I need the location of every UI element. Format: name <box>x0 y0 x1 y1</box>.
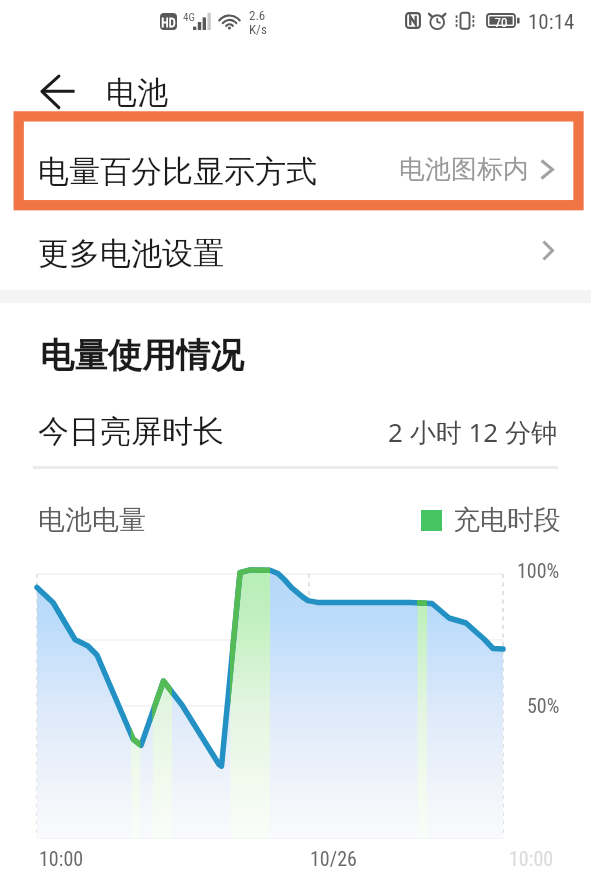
staticText: K/s <box>249 22 267 37</box>
button[interactable]: 电量百分比显示方式 <box>13 112 583 210</box>
staticText: 更多电池设置 <box>38 234 224 273</box>
staticText: 4G <box>183 11 195 24</box>
staticText: 2 小时 12 分钟 <box>388 414 557 450</box>
button[interactable]: 今日亮屏时长 <box>0 398 591 466</box>
staticText: 50% <box>527 694 560 717</box>
button[interactable]: 更多电池设置 <box>0 210 591 290</box>
staticText: HD <box>160 16 177 30</box>
staticText: 2.6 <box>249 8 266 23</box>
staticText: 10:00 <box>39 847 84 870</box>
staticText: 10/26 <box>310 847 357 870</box>
staticText: 电量百分比显示方式 <box>38 152 317 191</box>
staticText: 10:00 <box>509 847 554 870</box>
staticText: 电池电量 <box>38 503 146 537</box>
staticText: 充电时段 <box>453 503 561 537</box>
staticText: 今日亮屏时长 <box>38 412 224 451</box>
button[interactable]: Back <box>36 70 80 114</box>
staticText: 10:14 <box>528 10 575 35</box>
staticText: 电量使用情况 <box>40 334 244 377</box>
staticText: 100% <box>517 559 560 582</box>
staticText: 电池图标内 <box>399 153 529 186</box>
staticText: 电池 <box>106 73 168 112</box>
staticText: 70 <box>488 15 514 30</box>
